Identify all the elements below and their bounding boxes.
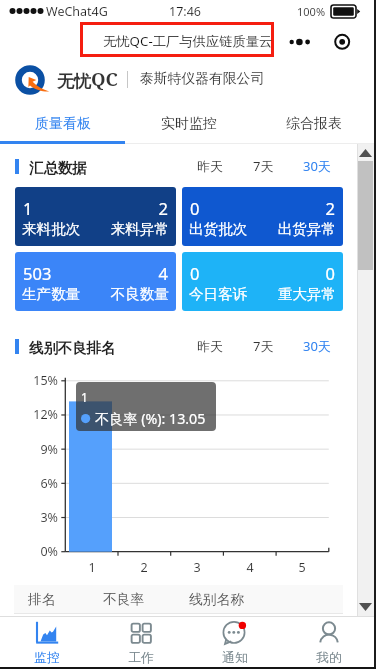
button[interactable]: 工作 (94, 617, 188, 667)
staticText: 监控 (0, 650, 94, 666)
staticText: 今日客诉 (189, 285, 248, 303)
staticText: 17:46 (169, 3, 201, 20)
staticText: 汇总数据 (29, 159, 87, 177)
button[interactable]: 通知 (188, 617, 282, 667)
button[interactable]: 7天 (248, 155, 278, 177)
button[interactable]: Close (330, 30, 354, 54)
button[interactable]: More options (285, 30, 317, 54)
staticText: 4 (15, 262, 168, 284)
button[interactable]: 实时监控 (126, 104, 251, 143)
staticText: 质量看板 (35, 115, 91, 133)
staticText: 3% (5, 509, 58, 526)
staticText: 来料批次 (22, 220, 81, 238)
staticText: 综合报表 (286, 115, 342, 133)
button[interactable]: 30天 (301, 335, 332, 357)
staticText: 4 (238, 559, 262, 576)
button[interactable]: 0 (182, 187, 343, 246)
staticText: 通知 (188, 650, 282, 666)
staticText: WeChat4G (46, 3, 108, 20)
staticText: 100% (297, 4, 326, 19)
staticText: 15% (5, 372, 58, 389)
staticText: 昨天 (197, 338, 223, 354)
staticText: 工作 (94, 650, 188, 666)
staticText: 昨天 (197, 158, 223, 174)
staticText: 来料异常 (15, 220, 169, 238)
staticText: 我的 (282, 650, 376, 666)
button[interactable]: 7天 (248, 335, 278, 357)
staticText: 1 (23, 197, 33, 219)
staticText: 重大异常 (182, 285, 336, 303)
staticText: 0 (190, 197, 200, 219)
staticText: 线别名称 (189, 591, 245, 608)
staticText: 1 (80, 559, 104, 576)
staticText: 生产数量 (22, 285, 81, 303)
button[interactable]: 1 (15, 187, 176, 246)
button[interactable]: 昨天 (192, 155, 228, 177)
button[interactable]: 0 (182, 252, 343, 311)
staticText: 0 (182, 262, 335, 284)
staticText: 5 (290, 559, 314, 576)
staticText: 2 (132, 559, 156, 576)
staticText: 不良率 (103, 591, 145, 608)
staticText: 0% (5, 543, 58, 560)
button[interactable]: 我的 (282, 617, 376, 667)
staticText: 不良数量 (15, 285, 169, 303)
button[interactable]: 监控 (0, 617, 94, 667)
staticText: 2 (182, 197, 335, 219)
staticText: 7天 (253, 157, 274, 175)
staticText: 线别不良排名 (29, 339, 116, 357)
staticText: 泰斯特仪器有限公司 (140, 70, 265, 87)
staticText: 12% (5, 406, 58, 423)
staticText: 无忧 (57, 71, 91, 92)
button[interactable]: 质量看板 (0, 104, 126, 143)
staticText: 2 (15, 197, 168, 219)
button[interactable]: 综合报表 (251, 104, 376, 143)
staticText: QC (91, 66, 118, 91)
staticText: 30天 (303, 157, 331, 175)
staticText: 9% (5, 441, 58, 458)
button[interactable]: 昨天 (192, 335, 228, 357)
button[interactable]: 503 (15, 252, 176, 311)
staticText: 503 (23, 262, 52, 284)
staticText: 出货批次 (189, 220, 248, 238)
staticText: 实时监控 (161, 115, 217, 133)
staticText: 3 (185, 559, 209, 576)
staticText: 0 (190, 262, 200, 284)
staticText: 出货异常 (182, 220, 336, 238)
staticText: 无忧QC-工厂与供应链质量云 (103, 32, 273, 50)
staticText: 6% (5, 475, 58, 492)
staticText: 7天 (253, 337, 274, 355)
button[interactable]: 30天 (301, 155, 332, 177)
staticText: 不良率 (%): 13.05 (95, 409, 206, 428)
staticText: 1 (81, 389, 88, 405)
staticText: 30天 (303, 337, 331, 355)
staticText: 排名 (28, 591, 56, 608)
